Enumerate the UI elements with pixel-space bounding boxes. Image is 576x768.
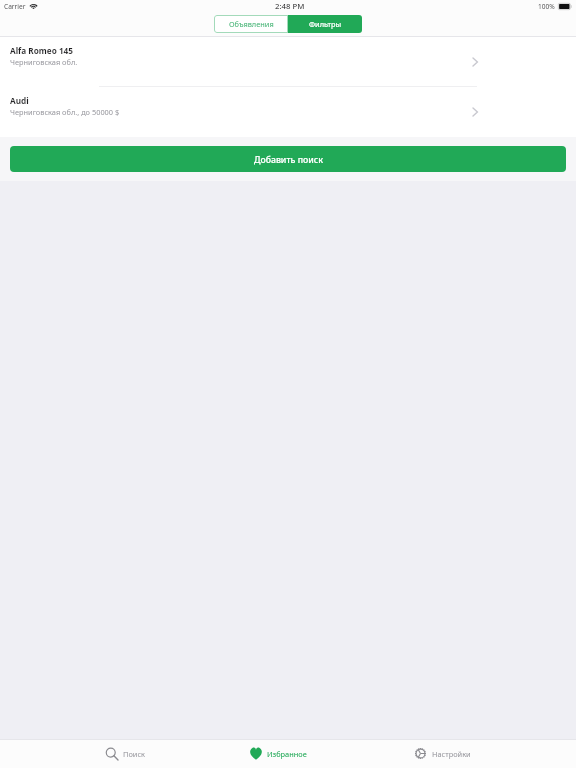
staticText: Поиск — [123, 749, 145, 759]
staticText: Фильтры — [309, 19, 342, 29]
staticText: Черниговская обл. — [10, 57, 78, 67]
staticText: Carrier — [4, 2, 26, 11]
staticText: Избранное — [267, 749, 307, 759]
other: Search — [105, 747, 119, 761]
button[interactable]: Settings — [412, 739, 473, 768]
other: Settings — [414, 747, 427, 760]
button[interactable]: Фильтры — [288, 15, 362, 33]
staticText: Черниговская обл., до 50000 $ — [10, 107, 120, 117]
button[interactable]: Audi — [0, 87, 576, 137]
button[interactable]: Alfa Romeo 145 — [0, 37, 576, 87]
staticText: Добавить поиск — [254, 154, 323, 166]
button[interactable]: Search — [103, 739, 147, 768]
staticText: Настройки — [432, 749, 471, 759]
staticText: 2:48 PM — [275, 1, 305, 12]
other: Favorites — [249, 747, 263, 760]
button[interactable]: Favorites — [247, 739, 309, 768]
staticText: Audi — [10, 95, 29, 106]
staticText: Alfa Romeo 145 — [10, 45, 73, 56]
staticText: Объявления — [229, 19, 274, 29]
staticText: 100% — [538, 2, 555, 11]
button[interactable]: Добавить поиск — [10, 146, 566, 172]
button[interactable]: Объявления — [214, 15, 288, 33]
